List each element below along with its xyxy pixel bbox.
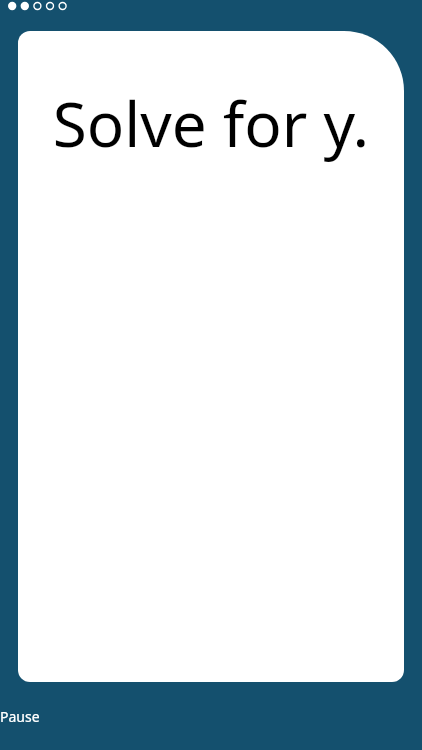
staticText: Solve for y. (18, 81, 404, 165)
staticText: Pause (0, 707, 40, 726)
